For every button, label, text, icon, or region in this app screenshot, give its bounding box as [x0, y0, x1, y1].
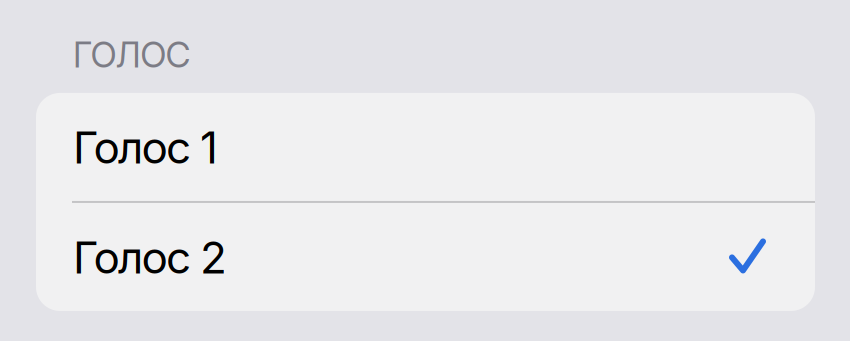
staticText: Голос 1	[73, 121, 218, 174]
button[interactable]: Голос 1	[36, 93, 815, 201]
staticText: ГОЛОС	[73, 34, 191, 76]
staticText: Голос 2	[73, 231, 227, 284]
button[interactable]: Голос 2	[36, 203, 815, 311]
